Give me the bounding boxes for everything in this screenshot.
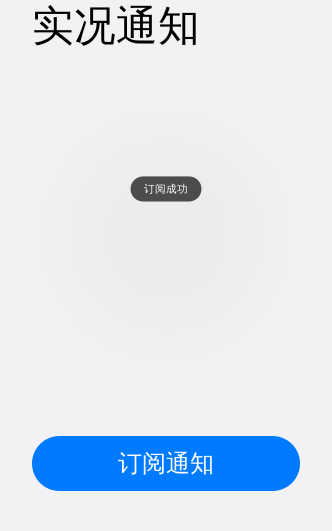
staticText: 订阅通知 (118, 448, 214, 479)
staticText: 实况通知 (32, 0, 200, 52)
staticText: 订阅成功 (144, 182, 188, 195)
button[interactable]: 订阅通知 (32, 436, 300, 491)
